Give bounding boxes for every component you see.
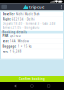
- staticText: QX7F2D: [10, 34, 21, 38]
- staticText: Confirm booking: [19, 77, 45, 81]
- staticText: 14A Window: [10, 39, 29, 43]
- button[interactable]: PNR: [1, 33, 63, 38]
- staticText: Departs 18:40 · Terminal 3 · Gate 24B: [3, 22, 56, 25]
- button[interactable]: More options: [60, 5, 63, 9]
- staticText: tripcue: [29, 4, 44, 9]
- button[interactable]: Back: [14, 84, 16, 87]
- button[interactable]: Recents: [47, 85, 50, 87]
- button[interactable]: Traveller: [1, 12, 63, 17]
- staticText: Baggage: [3, 45, 17, 48]
- button[interactable]: Baggage: [1, 44, 63, 49]
- staticText: Arrives 21:05 · Bengaluru: [3, 26, 40, 29]
- button[interactable]: Fare: [1, 49, 63, 54]
- button[interactable]: Menu: [1, 5, 7, 9]
- button[interactable]: Flight: [1, 17, 63, 22]
- button[interactable]: Confirm booking: [0, 76, 64, 82]
- staticText: 1 × 15 kg: [18, 45, 32, 48]
- staticText: Flight: [3, 18, 11, 21]
- staticText: Nidhi Mudit Shah: [16, 12, 40, 16]
- staticText: Fare: [3, 50, 9, 53]
- button[interactable]: Seat: [1, 39, 63, 44]
- staticText: PNR: [3, 34, 9, 38]
- staticText: Booking details: [3, 30, 27, 34]
- staticText: Traveller: [3, 12, 15, 16]
- staticText: Seat: [3, 39, 9, 43]
- staticText: ₹ 6,248: [10, 50, 22, 53]
- button[interactable]: Home: [30, 85, 33, 87]
- staticText: 6E 2134 · Delhi: [12, 18, 35, 21]
